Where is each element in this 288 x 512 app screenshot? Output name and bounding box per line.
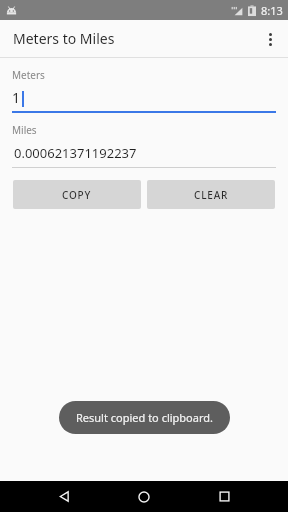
staticText: COPY <box>62 188 92 202</box>
staticText: 8:13 <box>261 3 283 18</box>
button[interactable]: 1 <box>12 88 276 107</box>
button[interactable]: 0.000621371192237 <box>14 144 276 162</box>
staticText: Result copied to clipboard. <box>76 410 213 425</box>
staticText: 1 <box>12 88 21 107</box>
button[interactable]: Back <box>44 481 84 512</box>
button[interactable]: More options <box>252 21 288 57</box>
button[interactable]: COPY <box>13 180 141 209</box>
staticText: Meters <box>12 68 45 82</box>
staticText: 0.000621371192237 <box>14 144 137 162</box>
staticText: CLEAR <box>194 188 229 202</box>
button[interactable]: CLEAR <box>147 180 275 209</box>
button[interactable]: Recent apps <box>204 481 244 512</box>
staticText: Meters to Miles <box>13 29 115 48</box>
staticText: Miles <box>12 123 37 137</box>
button[interactable]: Home <box>124 481 164 512</box>
